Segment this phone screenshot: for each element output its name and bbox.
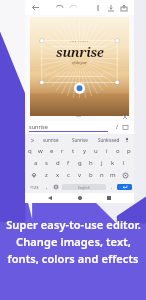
button[interactable]: l: [118, 157, 129, 169]
staticText: y: [83, 147, 87, 155]
staticText: n: [100, 171, 104, 179]
staticText: p: [127, 147, 131, 155]
staticText: h: [89, 159, 93, 167]
staticText: e: [50, 147, 54, 155]
button[interactable]: Space: [62, 184, 106, 190]
staticText: sunrise: [43, 137, 59, 143]
button[interactable]: v: [74, 169, 85, 181]
button[interactable]: More suggestions: [28, 136, 36, 144]
button[interactable]: u: [90, 145, 101, 157]
button[interactable]: Keyboard: [121, 123, 130, 132]
button[interactable]: o: [112, 145, 123, 157]
button[interactable]: e: [46, 145, 57, 157]
button[interactable]: Voice input: [123, 136, 131, 144]
staticText: sunrise: [29, 123, 48, 130]
button[interactable]: Back: [45, 193, 55, 203]
staticText: x: [56, 171, 60, 179]
staticText: r: [61, 147, 64, 155]
staticText: a: [34, 159, 38, 167]
button[interactable]: Emoji: [42, 182, 51, 192]
staticText: fonts, colors and effects: [7, 251, 139, 266]
staticText: s: [45, 159, 48, 167]
staticText: w: [38, 147, 43, 155]
button[interactable]: Share: [117, 1, 130, 14]
button[interactable]: c: [63, 169, 74, 181]
staticText: z: [45, 171, 48, 179]
button[interactable]: g: [74, 157, 85, 169]
button[interactable]: Image canvas: [30, 17, 129, 116]
staticText: ,: [46, 184, 48, 191]
staticText: k: [111, 159, 115, 167]
staticText: u: [94, 147, 98, 155]
staticText: English: [78, 185, 90, 190]
staticText: .: [111, 184, 113, 191]
staticText: l: [123, 159, 125, 167]
button[interactable]: z: [41, 169, 52, 181]
button[interactable]: Backspace: [118, 169, 133, 181]
button[interactable]: q: [25, 145, 35, 157]
button[interactable]: d: [52, 157, 63, 169]
staticText: THE FIRST: [70, 39, 89, 42]
staticText: of the year: [72, 61, 87, 65]
staticText: ?123: [30, 185, 39, 190]
button[interactable]: Undo: [53, 1, 66, 14]
button[interactable]: Shift: [26, 169, 41, 181]
staticText: o: [116, 147, 120, 155]
staticText: f: [67, 159, 70, 167]
button[interactable]: r: [57, 145, 68, 157]
button[interactable]: i: [101, 145, 112, 157]
button[interactable]: .: [107, 182, 116, 192]
staticText: c: [67, 171, 70, 179]
staticText: I: [116, 124, 118, 131]
staticText: d: [56, 159, 60, 167]
button[interactable]: f: [63, 157, 74, 169]
button[interactable]: Layers: [91, 1, 104, 14]
button[interactable]: Sunkissed: [94, 134, 123, 145]
staticText: g: [78, 159, 82, 167]
button[interactable]: Sunrise: [65, 134, 94, 145]
staticText: j: [101, 159, 103, 167]
staticText: t: [72, 147, 75, 155]
button[interactable]: Redo: [67, 1, 80, 14]
staticText: q: [28, 147, 32, 155]
button[interactable]: k: [107, 157, 118, 169]
staticText: m: [110, 171, 116, 179]
staticText: Change images, text,: [16, 234, 131, 249]
button[interactable]: Enter: [117, 184, 132, 190]
button[interactable]: sunrise: [29, 123, 108, 132]
button[interactable]: Change language: [51, 182, 61, 192]
button[interactable]: Download: [104, 1, 117, 14]
button[interactable]: h: [85, 157, 96, 169]
button[interactable]: Italic: [112, 123, 121, 132]
staticText: i: [106, 147, 108, 155]
button[interactable]: Back: [29, 1, 42, 14]
button[interactable]: a: [30, 157, 41, 169]
button[interactable]: Close: [121, 113, 128, 120]
button[interactable]: Home: [75, 193, 85, 203]
button[interactable]: j: [96, 157, 107, 169]
staticText: Sunkissed: [98, 137, 120, 143]
button[interactable]: b: [85, 169, 96, 181]
staticText: Sunrise: [72, 137, 88, 143]
staticText: v: [78, 171, 82, 179]
button[interactable]: x: [52, 169, 63, 181]
staticText: b: [89, 171, 93, 179]
button[interactable]: y: [79, 145, 90, 157]
staticText: Super easy-to-use editor.: [6, 217, 141, 232]
button[interactable]: Recent apps: [104, 193, 114, 203]
button[interactable]: w: [35, 145, 46, 157]
button[interactable]: s: [41, 157, 52, 169]
staticText: sunrise: [56, 43, 104, 61]
button[interactable]: m: [107, 169, 118, 181]
button[interactable]: t: [68, 145, 79, 157]
button[interactable]: n: [96, 169, 107, 181]
button[interactable]: sunrise: [36, 134, 65, 145]
button[interactable]: p: [123, 145, 134, 157]
button[interactable]: ?123: [26, 182, 42, 192]
